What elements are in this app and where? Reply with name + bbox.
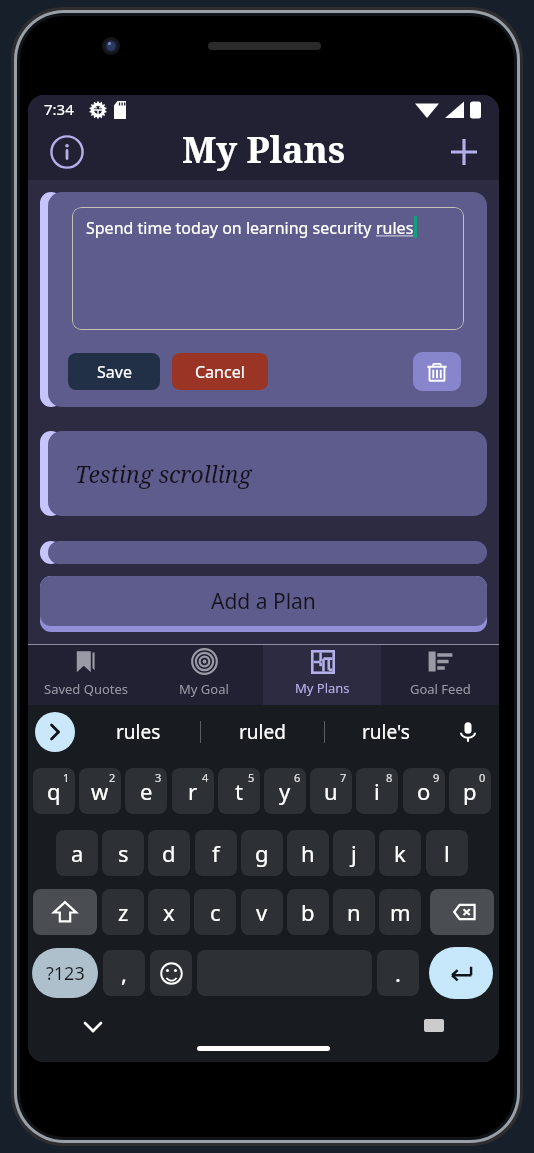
button[interactable]: d bbox=[148, 830, 190, 876]
button[interactable]: k bbox=[379, 830, 421, 876]
button[interactable]: Cancel bbox=[172, 353, 268, 390]
staticText: 8 bbox=[386, 770, 393, 785]
button[interactable]: . bbox=[377, 950, 419, 996]
button[interactable]: w bbox=[79, 768, 121, 814]
button[interactable]: rule's bbox=[346, 712, 426, 752]
button[interactable]: a bbox=[56, 830, 98, 876]
button[interactable]: c bbox=[194, 889, 236, 935]
button[interactable]: , bbox=[103, 950, 145, 996]
staticText: 6 bbox=[294, 770, 301, 785]
button[interactable]: Delete plan bbox=[413, 352, 461, 391]
button[interactable]: My Plans bbox=[263, 645, 381, 705]
button[interactable]: g bbox=[241, 830, 283, 876]
button[interactable]: m bbox=[379, 889, 421, 935]
staticText: x bbox=[163, 897, 175, 927]
button[interactable]: Enter bbox=[429, 947, 493, 999]
staticText: Saved Quotes bbox=[44, 680, 129, 698]
staticText: My Plans bbox=[295, 679, 350, 697]
button[interactable]: Add plan bbox=[441, 129, 487, 175]
button[interactable]: s bbox=[102, 830, 144, 876]
staticText: , bbox=[121, 958, 127, 988]
staticText: 7:34 bbox=[44, 99, 74, 119]
button[interactable]: y bbox=[264, 768, 306, 814]
button[interactable]: My Goal bbox=[145, 645, 263, 705]
button[interactable]: u bbox=[310, 768, 352, 814]
button[interactable]: x bbox=[148, 889, 190, 935]
staticText: rule's bbox=[362, 719, 410, 745]
button[interactable]: Testing scrolling bbox=[48, 431, 487, 516]
button[interactable]: rules bbox=[98, 712, 178, 752]
button[interactable]: i bbox=[356, 768, 398, 814]
button[interactable]: p bbox=[449, 768, 491, 814]
button[interactable]: v bbox=[241, 889, 283, 935]
button[interactable]: j bbox=[333, 830, 375, 876]
staticText: l bbox=[444, 838, 450, 868]
button[interactable]: Backspace bbox=[430, 889, 494, 935]
button[interactable]: Add a Plan bbox=[40, 576, 487, 632]
button[interactable]: Voice input bbox=[451, 715, 485, 749]
staticText: 7 bbox=[340, 770, 347, 785]
staticText: t bbox=[235, 776, 243, 806]
button[interactable]: Switch keyboard bbox=[421, 1013, 447, 1039]
button[interactable]: b bbox=[287, 889, 329, 935]
staticText: o bbox=[417, 776, 431, 806]
staticText: y bbox=[279, 776, 291, 806]
button[interactable]: Save bbox=[68, 353, 160, 390]
button[interactable]: h bbox=[287, 830, 329, 876]
button[interactable] bbox=[48, 541, 487, 564]
button[interactable]: Saved Quotes bbox=[28, 645, 145, 705]
button[interactable]: ruled bbox=[222, 712, 302, 752]
button[interactable]: Spend time today on learning security bbox=[72, 207, 464, 330]
button[interactable]: Spend time today on learning security bbox=[48, 192, 487, 407]
button[interactable]: n bbox=[333, 889, 375, 935]
staticText: k bbox=[394, 838, 406, 868]
staticText: b bbox=[301, 897, 315, 927]
staticText: w bbox=[91, 776, 109, 806]
button[interactable]: e bbox=[125, 768, 167, 814]
button[interactable]: l bbox=[426, 830, 468, 876]
button[interactable]: Info bbox=[44, 129, 90, 175]
button[interactable]: Emoji bbox=[150, 950, 192, 996]
staticText: j bbox=[351, 838, 357, 868]
staticText: e bbox=[140, 776, 153, 806]
staticText: 4 bbox=[202, 770, 209, 785]
staticText: 9 bbox=[433, 770, 440, 785]
staticText: 0 bbox=[479, 770, 486, 785]
staticText: h bbox=[301, 838, 315, 868]
button[interactable]: z bbox=[102, 889, 144, 935]
button[interactable]: Shift bbox=[33, 889, 97, 935]
button[interactable]: o bbox=[403, 768, 445, 814]
staticText: My Goal bbox=[179, 680, 229, 698]
staticText: u bbox=[324, 776, 338, 806]
staticText: c bbox=[210, 897, 221, 927]
button[interactable]: ?123 bbox=[32, 948, 98, 998]
button[interactable]: q bbox=[33, 768, 75, 814]
staticText: p bbox=[463, 776, 477, 806]
staticText: Save bbox=[97, 361, 132, 383]
staticText: d bbox=[162, 838, 176, 868]
staticText: q bbox=[47, 776, 61, 806]
staticText: 2 bbox=[109, 770, 116, 785]
staticText: ruled bbox=[239, 719, 286, 745]
button[interactable]: f bbox=[195, 830, 237, 876]
staticText: rules bbox=[116, 719, 161, 745]
staticText: My Plans bbox=[182, 125, 346, 174]
button[interactable]: Hide keyboard bbox=[80, 1013, 106, 1039]
staticText: 1 bbox=[63, 770, 70, 785]
staticText: ?123 bbox=[46, 961, 85, 986]
staticText: i bbox=[374, 776, 380, 806]
button[interactable]: r bbox=[172, 768, 214, 814]
staticText: Spend time today on learning security bbox=[86, 217, 376, 239]
button[interactable]: More suggestions bbox=[35, 712, 75, 752]
staticText: g bbox=[255, 838, 269, 868]
staticText: Testing scrolling bbox=[75, 458, 252, 489]
staticText: . bbox=[395, 958, 401, 988]
staticText: 3 bbox=[155, 770, 162, 785]
staticText: m bbox=[390, 897, 411, 927]
staticText: f bbox=[212, 838, 220, 868]
button[interactable]: Goal Feed bbox=[381, 645, 499, 705]
button[interactable]: t bbox=[218, 768, 260, 814]
staticText: 5 bbox=[248, 770, 255, 785]
staticText: rules bbox=[376, 217, 414, 239]
